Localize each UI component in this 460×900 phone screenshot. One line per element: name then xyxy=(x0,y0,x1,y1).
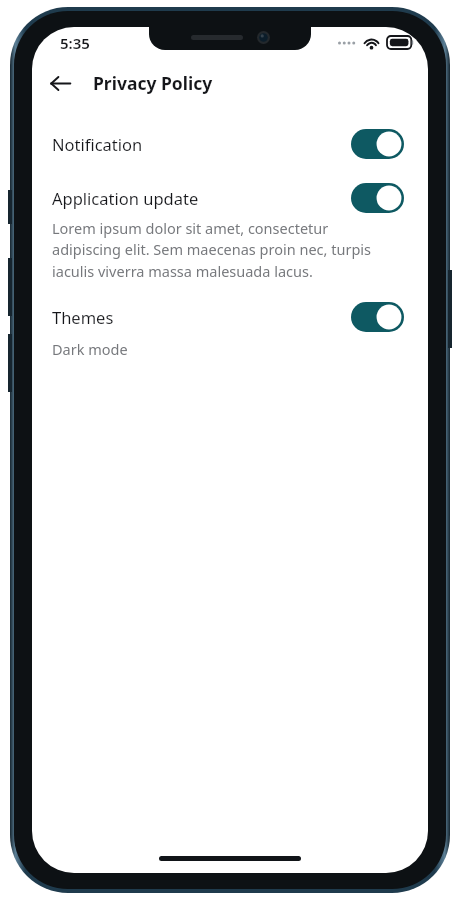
staticText: Application update xyxy=(52,187,351,209)
staticText: Notification xyxy=(52,133,351,155)
staticText: Lorem ipsum dolor sit amet, consectetur … xyxy=(52,218,400,282)
button[interactable]: Toggle xyxy=(351,183,404,213)
staticText: 5:35 xyxy=(60,33,90,53)
button[interactable]: Back xyxy=(40,63,80,103)
button[interactable]: Application update xyxy=(32,180,428,216)
staticText: Dark mode xyxy=(52,339,128,359)
button[interactable]: Notification xyxy=(32,126,428,162)
staticText: Themes xyxy=(52,306,351,328)
button[interactable]: Toggle xyxy=(351,129,404,159)
button[interactable]: Toggle xyxy=(351,302,404,332)
button[interactable]: Themes xyxy=(32,299,428,335)
staticText: Privacy Policy xyxy=(93,71,213,95)
